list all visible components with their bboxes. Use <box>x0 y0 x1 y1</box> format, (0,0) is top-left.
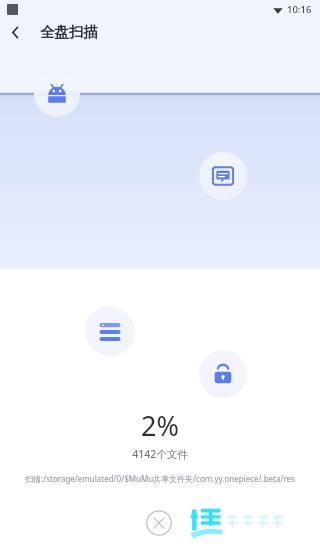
staticText: 2% <box>0 407 320 444</box>
staticText: 10:16 <box>287 3 312 16</box>
staticText: 扫描:/storage/emulated/0/$MuMu共享文件夹/com.yy… <box>8 473 312 484</box>
staticText: 4142个文件 <box>0 447 320 461</box>
button[interactable]: Back <box>0 18 30 46</box>
staticText: 全盘扫描 <box>40 23 98 41</box>
button[interactable]: Cancel scan <box>140 504 178 542</box>
